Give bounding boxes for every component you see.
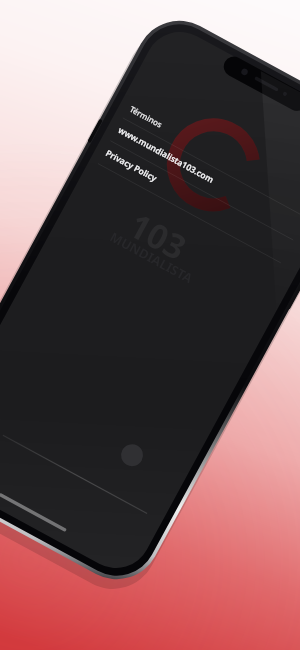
button[interactable]: Mundialista 103 phone app preview: [0, 0, 300, 650]
